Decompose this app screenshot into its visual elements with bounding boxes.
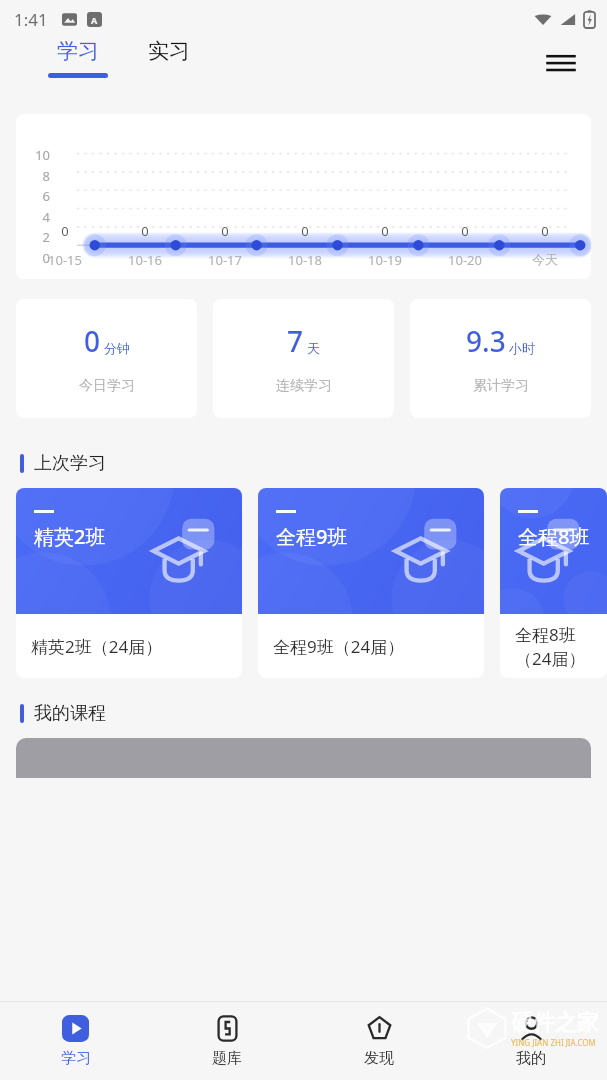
staticText: 我的课程	[34, 702, 106, 724]
button[interactable]: 10	[16, 114, 591, 279]
staticText: 9.3	[466, 322, 506, 360]
staticText: 10-17	[185, 251, 265, 269]
button[interactable]: 精英2班	[16, 488, 242, 678]
staticText: 0	[22, 249, 50, 267]
staticText: 分钟	[104, 340, 130, 356]
staticText: 学习	[57, 38, 99, 64]
staticText: 0	[265, 222, 345, 240]
staticText: 10-20	[425, 251, 505, 269]
staticText: 今日学习	[79, 377, 135, 395]
staticText: 上次学习	[34, 452, 106, 474]
staticText: 硬件之家	[511, 1009, 599, 1037]
staticText: YING JIAN ZHI JIA.COM	[511, 1037, 596, 1048]
button[interactable]: 7	[213, 299, 394, 418]
staticText: 发现	[364, 1049, 394, 1068]
staticText: 天	[307, 340, 320, 356]
staticText: 1:41	[14, 8, 48, 31]
staticText: 0	[84, 322, 101, 360]
staticText: 全程9班（24届）	[273, 635, 405, 658]
staticText: 精英2班（24届）	[31, 635, 163, 658]
staticText: 今天	[505, 251, 585, 267]
staticText: 连续学习	[276, 377, 332, 395]
staticText: 8	[22, 167, 50, 185]
staticText: 0	[425, 222, 505, 240]
button[interactable]: 全程9班	[258, 488, 484, 678]
button[interactable]: 0	[16, 299, 197, 418]
button[interactable]: 实习	[144, 38, 194, 64]
button[interactable]: Menu	[541, 44, 581, 84]
staticText: 我的	[516, 1049, 546, 1068]
staticText: 0	[25, 222, 105, 240]
staticText: 10-16	[105, 251, 185, 269]
staticText: 小时	[509, 340, 535, 356]
button[interactable]: 9.3	[410, 299, 591, 418]
button[interactable]: 学习	[0, 1002, 151, 1080]
staticText: 10-18	[265, 251, 345, 269]
staticText: 2	[22, 228, 50, 246]
staticText: 0	[505, 222, 585, 240]
staticText: 全程9班	[276, 523, 348, 550]
button[interactable]	[16, 738, 591, 778]
button[interactable]: 发现	[303, 1002, 455, 1080]
button[interactable]: 题库	[151, 1002, 303, 1080]
staticText: 6	[22, 187, 50, 205]
staticText: 题库	[212, 1049, 242, 1068]
staticText: 精英2班	[34, 523, 106, 550]
staticText: 10-19	[345, 251, 425, 269]
staticText: 0	[105, 222, 185, 240]
staticText: 全程8班	[518, 523, 590, 550]
staticText: A	[91, 14, 98, 26]
staticText: 7	[287, 322, 304, 360]
staticText: 4	[22, 208, 50, 226]
staticText: 0	[185, 222, 265, 240]
staticText: 累计学习	[473, 377, 529, 395]
staticText: 全程8班（24届）	[515, 623, 607, 670]
staticText: 10	[22, 146, 50, 164]
button[interactable]: 我的	[455, 1002, 607, 1080]
staticText: 10-15	[25, 251, 105, 269]
button[interactable]: 全程8班	[500, 488, 607, 678]
staticText: 0	[345, 222, 425, 240]
staticText: 学习	[61, 1049, 91, 1068]
button[interactable]: 学习	[44, 38, 112, 78]
staticText: 实习	[148, 38, 190, 64]
